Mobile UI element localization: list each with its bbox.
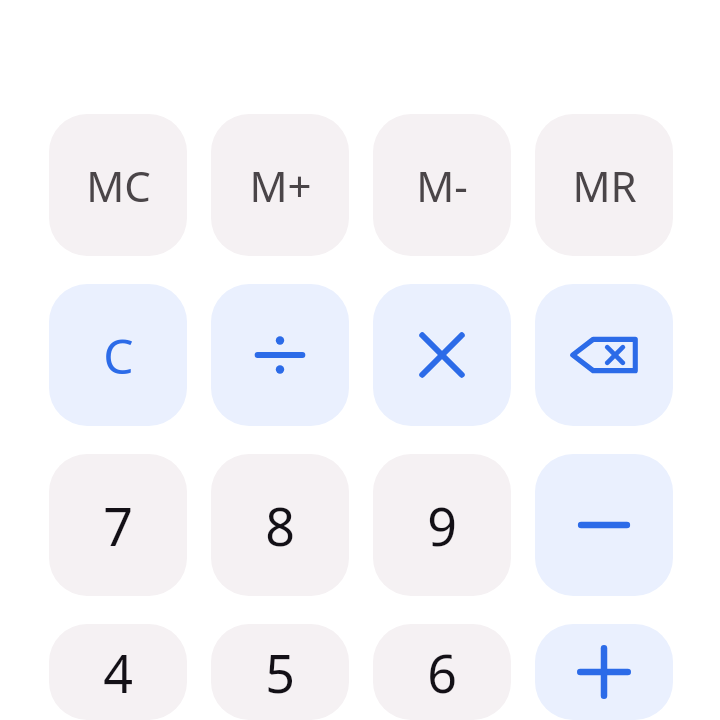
button[interactable]: 5 bbox=[211, 624, 349, 720]
staticText: MC bbox=[86, 157, 151, 214]
staticText: M- bbox=[416, 157, 468, 214]
button[interactable]: 6 bbox=[373, 624, 511, 720]
staticText: M+ bbox=[249, 157, 312, 214]
button[interactable]: Plus bbox=[535, 624, 673, 720]
button[interactable]: Backspace bbox=[535, 284, 673, 426]
button[interactable]: MR bbox=[535, 114, 673, 256]
button[interactable]: Multiply bbox=[373, 284, 511, 426]
button[interactable]: 9 bbox=[373, 454, 511, 596]
staticText: 7 bbox=[103, 490, 133, 561]
button[interactable]: M- bbox=[373, 114, 511, 256]
button[interactable]: Divide bbox=[211, 284, 349, 426]
staticText: 5 bbox=[265, 637, 295, 708]
staticText: 6 bbox=[427, 637, 457, 708]
button[interactable]: MC bbox=[49, 114, 187, 256]
button[interactable]: 4 bbox=[49, 624, 187, 720]
staticText: 8 bbox=[265, 490, 295, 561]
button[interactable]: Minus bbox=[535, 454, 673, 596]
button[interactable]: C bbox=[49, 284, 187, 426]
button[interactable]: M+ bbox=[211, 114, 349, 256]
staticText: 4 bbox=[103, 637, 133, 708]
button[interactable]: 8 bbox=[211, 454, 349, 596]
staticText: MR bbox=[572, 157, 637, 214]
button[interactable]: 7 bbox=[49, 454, 187, 596]
staticText: 9 bbox=[427, 490, 457, 561]
staticText: C bbox=[103, 323, 134, 388]
